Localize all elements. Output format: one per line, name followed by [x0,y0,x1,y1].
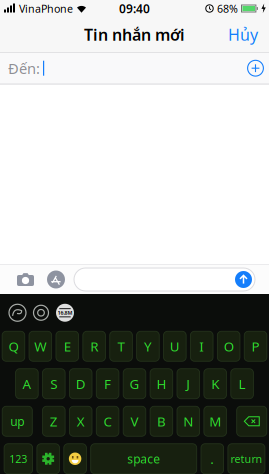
button[interactable]: Y [137,331,159,361]
staticText: F [104,375,111,393]
button[interactable]: K [204,369,226,399]
button[interactable]: W [29,331,52,361]
button[interactable]: C [96,406,119,436]
button[interactable]: . [201,444,224,474]
button[interactable]: G [123,369,146,399]
button[interactable]: return [228,444,265,474]
staticText: E [64,337,71,355]
staticText: W [34,337,46,355]
staticText: space [127,451,160,467]
button[interactable] [64,444,86,474]
button[interactable]: space [91,444,197,474]
button[interactable]: H [150,369,173,399]
button[interactable]: I [190,331,213,361]
staticText: Tin nhắn mới [84,24,185,45]
button[interactable]: 16.8M [56,304,74,322]
button[interactable]: D [69,369,92,399]
button[interactable]: L [231,369,253,399]
staticText: X [77,412,85,430]
button[interactable]: V [123,406,146,436]
staticText: D [76,375,86,393]
button[interactable]: 123 [4,444,33,474]
staticText: K [211,375,219,393]
staticText: O [224,337,234,355]
button[interactable]: T [110,331,132,361]
staticText: A [22,375,31,393]
button[interactable]: N [177,406,200,436]
staticText: Z [50,412,58,430]
button[interactable] [0,272,34,286]
staticText: up [10,413,24,429]
button[interactable] [37,444,59,474]
staticText: 09:40 [119,0,150,16]
button[interactable]: Z [42,406,65,436]
button[interactable] [247,60,269,77]
button[interactable]: X [69,406,92,436]
staticText: S [50,375,57,393]
button[interactable]: P [244,331,267,361]
button[interactable]: S [42,369,65,399]
button[interactable]: J [177,369,200,399]
staticText: J [186,375,190,393]
button[interactable]: U [164,331,186,361]
staticText: Hủy [228,24,258,45]
staticText: G [129,375,139,393]
button[interactable]: A [16,369,38,399]
button[interactable] [237,406,267,436]
staticText: N [183,412,193,430]
staticText: V [130,412,138,430]
button[interactable]: M [204,406,226,436]
button[interactable] [34,270,65,288]
staticText: return [230,452,262,466]
staticText: L [239,375,246,393]
staticText: VinaPhone [19,1,73,16]
staticText: B [157,412,166,430]
staticText: P [252,337,260,355]
staticText: Đến: [8,58,40,78]
staticText: Y [144,337,152,355]
button[interactable]: R [83,331,105,361]
staticText: 68% [217,1,238,16]
staticText: 16.8M [57,309,72,316]
button[interactable]: B [150,406,173,436]
staticText: Q [8,337,18,355]
button[interactable]: Q [2,331,25,361]
button[interactable] [235,271,255,288]
button[interactable]: F [96,369,119,399]
staticText: . [210,450,214,468]
button[interactable]: Hủy [228,24,269,45]
staticText: R [90,337,98,355]
staticText: I [199,337,204,355]
button[interactable]: O [217,331,240,361]
staticText: 123 [9,452,27,466]
button[interactable]: up [2,406,32,436]
button[interactable] [9,304,26,321]
staticText: H [156,375,166,393]
staticText: M [209,412,221,430]
staticText: C [104,412,112,430]
button[interactable] [33,305,48,320]
staticText: T [118,337,125,355]
staticText: U [170,337,180,355]
button[interactable]: E [56,331,79,361]
